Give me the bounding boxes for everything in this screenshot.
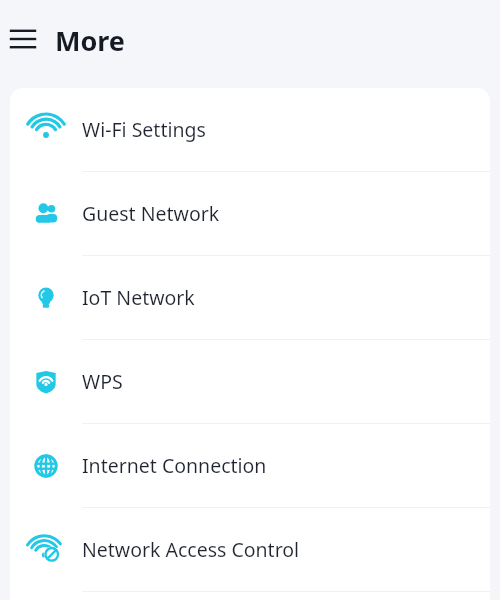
button[interactable]: Open navigation menu (0, 16, 46, 62)
staticText: Wi-Fi Settings (82, 116, 206, 143)
staticText: Guest Network (82, 200, 220, 227)
staticText: Internet Connection (82, 452, 267, 479)
button[interactable]: Internet Connection (10, 424, 490, 507)
button[interactable]: Network Access Control (10, 508, 490, 591)
button[interactable]: Wi-Fi Settings (10, 88, 490, 171)
button[interactable]: WPS (10, 340, 490, 423)
staticText: WPS (82, 368, 123, 395)
staticText: Network Access Control (82, 536, 300, 563)
staticText: IoT Network (82, 284, 195, 311)
button[interactable]: IoT Network (10, 256, 490, 339)
staticText: More (55, 22, 125, 59)
button[interactable]: Guest Network (10, 172, 490, 255)
